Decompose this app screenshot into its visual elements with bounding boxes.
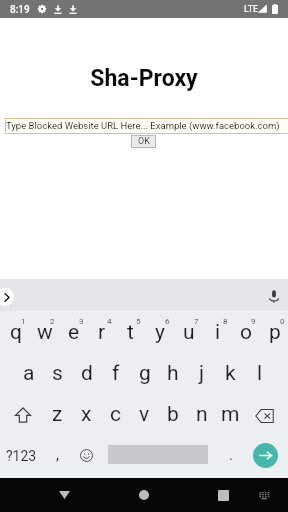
staticText: 8 — [223, 317, 228, 326]
button[interactable]: o — [230, 312, 259, 353]
button[interactable]: z — [43, 394, 72, 435]
staticText: Type Blocked Website URL Here... Example… — [6, 120, 280, 131]
staticText: l — [257, 361, 263, 386]
button[interactable]: q — [0, 312, 29, 353]
button[interactable]: Switch keyboard — [248, 478, 280, 512]
staticText: , — [56, 446, 59, 464]
button[interactable]: c — [101, 394, 130, 435]
button[interactable]: . — [216, 435, 245, 476]
staticText: 8:19 — [10, 4, 30, 16]
staticText: 9 — [251, 317, 256, 326]
staticText: r — [98, 320, 106, 345]
button[interactable]: Enter — [245, 435, 288, 476]
button[interactable]: v — [130, 394, 159, 435]
button[interactable]: p — [259, 312, 288, 353]
staticText: z — [52, 402, 63, 427]
button[interactable]: y — [144, 312, 173, 353]
button[interactable]: j — [187, 353, 216, 394]
staticText: k — [225, 361, 236, 386]
staticText: m — [221, 402, 240, 427]
button[interactable]: a — [14, 353, 43, 394]
staticText: 4 — [107, 317, 112, 326]
staticText: i — [215, 320, 221, 345]
staticText: n — [196, 402, 208, 427]
staticText: p — [269, 320, 281, 345]
staticText: 5 — [136, 317, 141, 326]
staticText: v — [139, 402, 150, 427]
button[interactable] — [101, 435, 216, 476]
button[interactable]: More suggestions — [0, 288, 14, 306]
staticText: c — [110, 402, 121, 427]
staticText: LTE — [244, 4, 259, 15]
button[interactable]: x — [72, 394, 101, 435]
staticText: . — [229, 446, 233, 464]
button[interactable]: Emoji — [72, 435, 101, 476]
button[interactable]: m — [216, 394, 245, 435]
staticText: 2 — [50, 317, 55, 326]
button[interactable]: Recent apps — [207, 478, 239, 512]
staticText: x — [81, 402, 92, 427]
button[interactable]: f — [101, 353, 130, 394]
button[interactable]: Type Blocked Website URL Here... Example… — [5, 118, 288, 134]
button[interactable]: u — [173, 312, 202, 353]
button[interactable]: s — [43, 353, 72, 394]
button[interactable]: i — [202, 312, 231, 353]
button[interactable]: g — [130, 353, 159, 394]
button[interactable]: ?123 — [0, 435, 43, 476]
button[interactable]: Back — [48, 478, 80, 512]
button[interactable]: Backspace — [245, 394, 288, 435]
staticText: h — [167, 361, 179, 386]
button[interactable]: t — [115, 312, 144, 353]
staticText: u — [183, 320, 195, 345]
staticText: 3 — [79, 317, 84, 326]
button[interactable]: , — [43, 435, 72, 476]
staticText: w — [37, 320, 53, 345]
staticText: Sha-Proxy — [0, 65, 288, 92]
staticText: ?123 — [6, 448, 37, 464]
button[interactable]: h — [158, 353, 187, 394]
staticText: a — [23, 361, 35, 386]
button[interactable]: Shift — [0, 394, 43, 435]
button[interactable]: l — [245, 353, 274, 394]
staticText: g — [139, 361, 151, 386]
staticText: t — [127, 320, 134, 345]
button[interactable]: n — [187, 394, 216, 435]
staticText: 7 — [194, 317, 199, 326]
staticText: OK — [138, 136, 150, 147]
button[interactable]: OK — [131, 135, 156, 148]
button[interactable]: d — [72, 353, 101, 394]
staticText: 6 — [165, 317, 170, 326]
staticText: j — [199, 361, 205, 386]
button[interactable]: b — [158, 394, 187, 435]
staticText: y — [155, 320, 165, 345]
staticText: d — [81, 361, 93, 386]
staticText: q — [10, 320, 22, 345]
staticText: e — [68, 320, 80, 345]
staticText: 1 — [21, 317, 26, 326]
button[interactable]: w — [29, 312, 58, 353]
staticText: 0 — [280, 317, 285, 326]
button[interactable]: Voice input — [265, 287, 283, 305]
button[interactable]: Home — [128, 478, 160, 512]
staticText: s — [52, 361, 63, 386]
staticText: o — [240, 320, 252, 345]
staticText: f — [112, 361, 120, 386]
button[interactable]: e — [58, 312, 87, 353]
staticText: b — [167, 402, 179, 427]
button[interactable]: r — [86, 312, 115, 353]
button[interactable]: k — [216, 353, 245, 394]
